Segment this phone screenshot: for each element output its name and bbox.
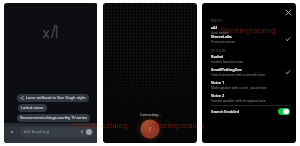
staticText: xAI	[211, 25, 218, 30]
staticText: Grok model	[211, 31, 229, 35]
staticText: Recommend a binge-worthy TV series	[20, 115, 87, 121]
button[interactable]: xAI	[211, 25, 290, 36]
staticText: Latest news	[21, 105, 44, 111]
staticText: Female speaker with an upbeat tone	[211, 99, 266, 103]
button[interactable]: Close	[283, 7, 293, 17]
staticText: @testingcatalog	[72, 120, 128, 130]
button[interactable]: Rachel	[211, 54, 290, 65]
staticText: Lone sailboat in Van Gogh style	[26, 95, 86, 101]
staticText: nvidia's favorite voice	[211, 60, 243, 64]
staticText: Voice 2	[211, 93, 225, 98]
staticText: ElevenLabs	[211, 34, 232, 39]
button[interactable]: Voice 1	[211, 80, 290, 91]
button[interactable]: SmallPettingZoo	[211, 67, 290, 78]
button[interactable]: Add attachment	[7, 127, 17, 137]
staticText: @testingcatalog	[148, 120, 204, 130]
staticText: OPTIONS	[211, 49, 226, 53]
staticText: MODEL	[211, 19, 223, 23]
staticText: Rachel	[211, 54, 224, 59]
button[interactable]: Ask Anything	[20, 127, 94, 137]
staticText: Voice 1	[211, 80, 225, 85]
staticText: @testingcatalog	[220, 25, 276, 35]
button[interactable]: Lone sailboat in Van Gogh style	[17, 94, 89, 102]
staticText: Male speaker with a cool, casual tone	[211, 86, 267, 90]
staticText: Search Enabled	[211, 109, 240, 114]
button[interactable]: Search Enabled	[211, 107, 290, 116]
button[interactable]: Latest news	[18, 104, 47, 112]
button[interactable]: Voice 2	[211, 93, 290, 104]
staticText: Twitch streamer with a smooth tone	[211, 73, 266, 77]
staticText: Connecting...	[140, 112, 161, 117]
button[interactable]: ElevenLabs	[211, 34, 290, 45]
button[interactable]: Recommend a binge-worthy TV series	[17, 114, 90, 122]
staticText: Ask Anything	[24, 129, 49, 135]
staticText: Premium voices	[211, 40, 235, 44]
staticText: SmallPettingZoo	[211, 67, 242, 72]
